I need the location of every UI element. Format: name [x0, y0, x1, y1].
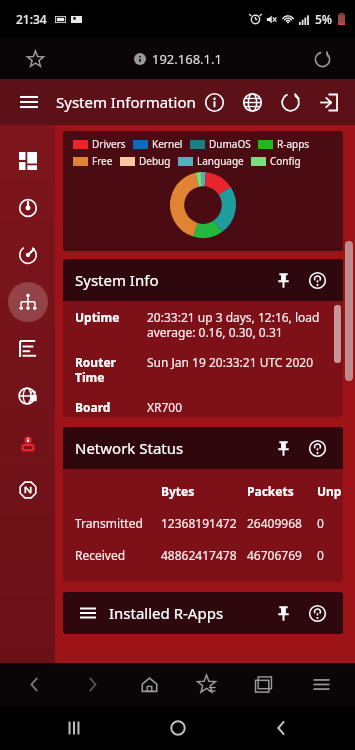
button[interactable]: Help: [303, 434, 331, 462]
staticText: System Info: [75, 270, 159, 290]
button[interactable]: Information: [195, 83, 233, 121]
button[interactable]: Menu: [75, 600, 101, 626]
staticText: 192.168.1.1: [152, 50, 222, 68]
button[interactable]: Menu: [14, 87, 44, 117]
button[interactable]: Bookmark: [20, 44, 50, 74]
button[interactable]: Logout: [309, 83, 347, 121]
button[interactable]: Help: [303, 599, 331, 627]
button[interactable]: Reload: [307, 44, 337, 74]
button[interactable]: Back: [11, 663, 57, 706]
button[interactable]: Bookmarks: [183, 663, 229, 706]
button[interactable]: Recents: [44, 706, 104, 750]
button[interactable]: More: [298, 663, 344, 706]
button[interactable]: Reboot: [271, 83, 309, 121]
button[interactable]: Forward: [69, 663, 115, 706]
button[interactable]: Network map: [8, 282, 48, 322]
button[interactable]: Speed test: [8, 188, 48, 228]
button[interactable]: Pin: [269, 266, 297, 294]
staticText: Drivers: [92, 137, 126, 151]
button[interactable]: Logs: [8, 329, 48, 369]
button[interactable]: Help: [303, 266, 331, 294]
staticText: 12368191472: [161, 515, 247, 531]
staticText: Packets: [247, 483, 317, 499]
button[interactable]: Dashboard: [8, 141, 48, 181]
staticText: Unprioriti: [317, 483, 343, 499]
button[interactable]: Tabs: [240, 663, 286, 706]
button[interactable]: QoS: [8, 235, 48, 275]
staticText: Config: [270, 154, 301, 168]
staticText: Bytes: [161, 483, 247, 499]
staticText: Free: [92, 154, 113, 168]
staticText: DumaOS: [209, 137, 251, 151]
button[interactable]: Back: [251, 706, 311, 750]
staticText: 0: [317, 515, 324, 531]
staticText: Sun Jan 19 20:33:21 UTC 2020: [147, 354, 325, 370]
button[interactable]: Language: [233, 83, 271, 121]
staticText: Uptime: [75, 309, 147, 325]
staticText: 26409968: [247, 515, 317, 531]
staticText: Transmitted: [75, 515, 161, 531]
staticText: 46706769: [247, 547, 317, 563]
staticText: XR700: [147, 399, 325, 415]
staticText: 21:34: [16, 11, 47, 27]
staticText: Board: [75, 399, 147, 415]
staticText: Installed R-Apps: [109, 603, 224, 623]
staticText: Language: [197, 154, 244, 168]
button[interactable]: Home: [126, 663, 172, 706]
button[interactable]: Pin: [269, 599, 297, 627]
button[interactable]: Home: [148, 706, 208, 750]
staticText: Debug: [139, 154, 171, 168]
staticText: Kernel: [152, 137, 183, 151]
button[interactable]: Geo filter: [8, 423, 48, 463]
staticText: 0: [317, 547, 324, 563]
staticText: 5%: [315, 11, 333, 27]
button[interactable]: Pin: [269, 434, 297, 462]
staticText: R-apps: [277, 137, 310, 151]
button[interactable]: Netduma: [8, 470, 48, 510]
staticText: Router Time: [75, 354, 147, 385]
button[interactable]: VPN: [8, 376, 48, 416]
staticText: Network Status: [75, 438, 184, 458]
staticText: System Information: [56, 92, 196, 112]
staticText: 20:33:21 up 3 days, 12:16, load average:…: [147, 309, 325, 340]
staticText: 48862417478: [161, 547, 247, 563]
staticText: Received: [75, 547, 161, 563]
